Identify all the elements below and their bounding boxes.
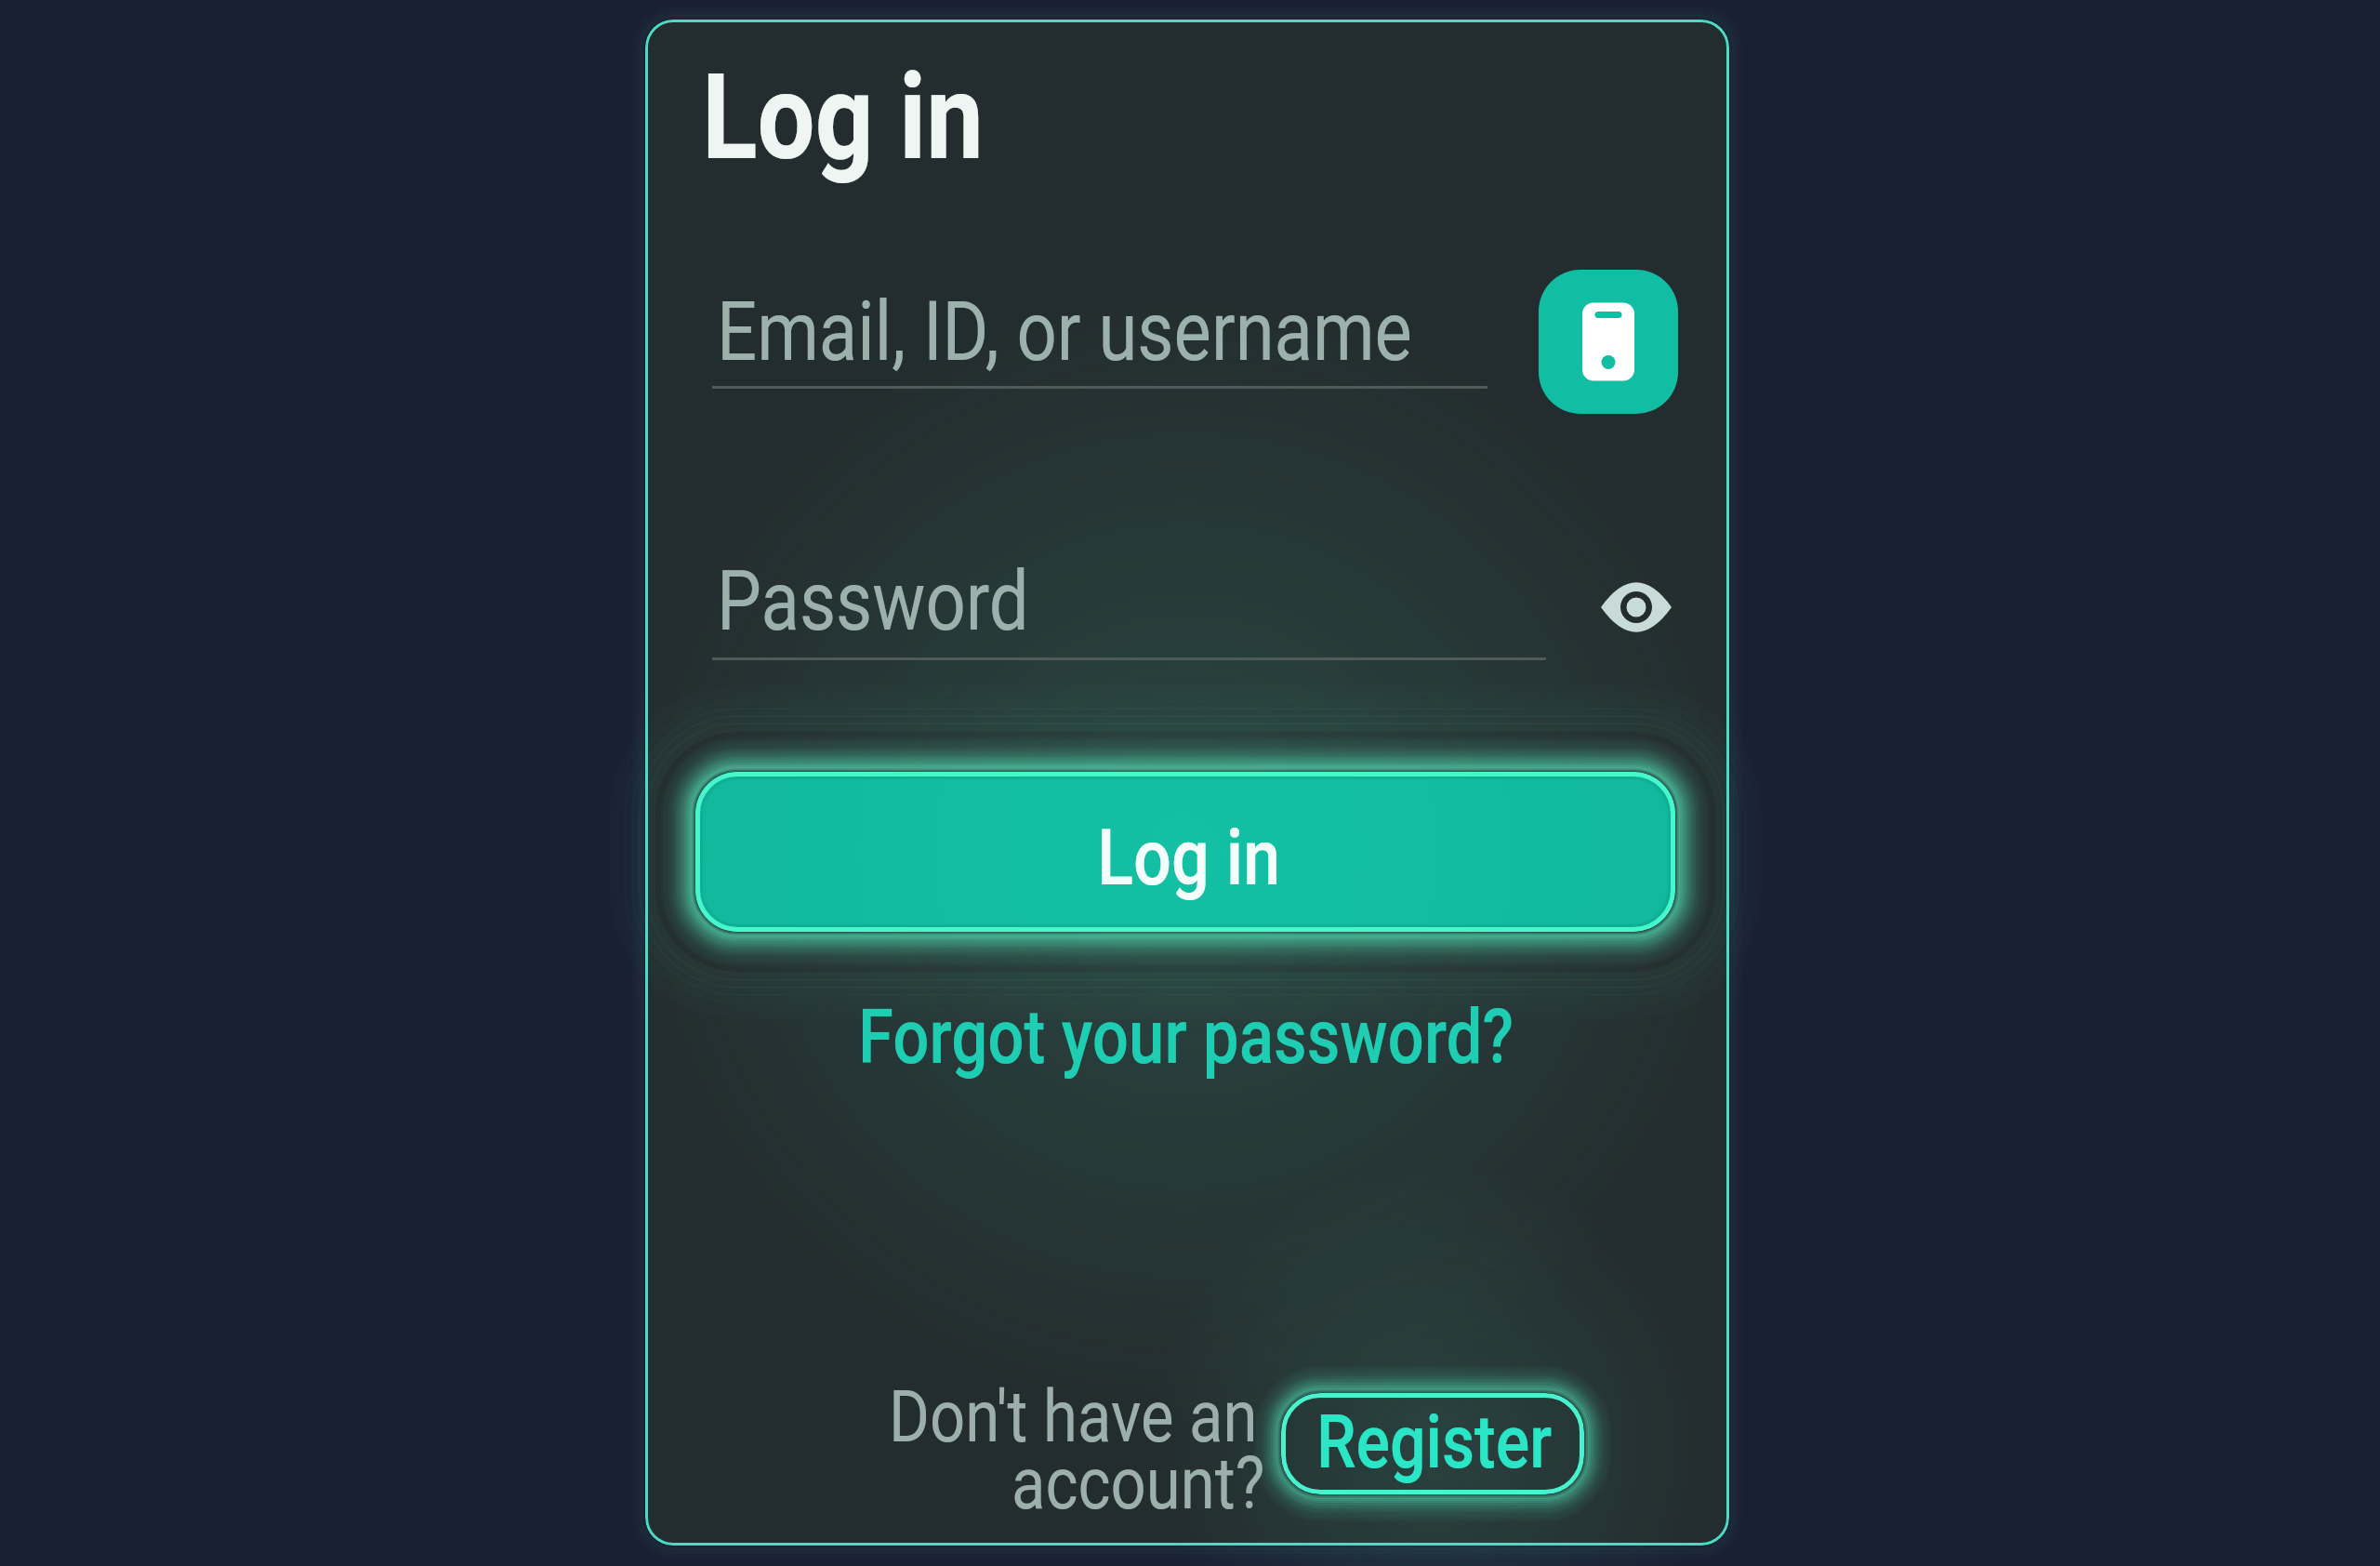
staticText: Don't have an [889,1374,1258,1459]
staticText: Email, ID, or username [717,283,1412,380]
staticText: Log in [1097,812,1281,903]
button[interactable] [695,772,1675,932]
staticText: account? [1011,1440,1265,1526]
staticText: Password [717,552,1029,649]
button[interactable] [1539,270,1678,414]
button[interactable]: Forgot your password? [858,993,1514,1081]
button[interactable] [1601,580,1672,634]
staticText: Log in [702,47,984,188]
button[interactable] [1281,1393,1584,1494]
staticText: Register [1316,1399,1553,1486]
